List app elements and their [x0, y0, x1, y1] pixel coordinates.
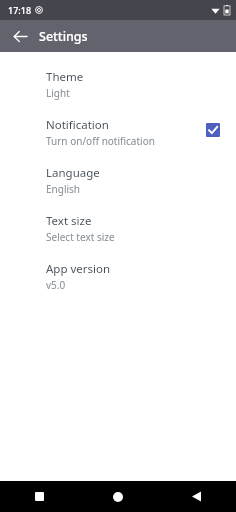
staticText: Language — [46, 165, 100, 181]
button[interactable]: App version — [0, 261, 236, 309]
button[interactable]: Back — [8, 24, 32, 48]
button[interactable]: Language — [0, 165, 236, 213]
staticText: 17:18 — [8, 4, 32, 16]
button[interactable]: Theme — [0, 69, 236, 117]
staticText: Turn on/off notification — [46, 134, 155, 148]
staticText: v5.0 — [46, 278, 66, 292]
staticText: App version — [46, 261, 111, 277]
button[interactable]: Recent apps — [0, 481, 78, 512]
staticText: Notification — [46, 117, 109, 133]
staticText: Theme — [46, 69, 84, 85]
staticText: Settings — [39, 28, 88, 45]
staticText: Select text size — [46, 230, 115, 244]
button[interactable]: Home — [78, 481, 157, 512]
staticText: Light — [46, 86, 70, 100]
button[interactable]: Back — [157, 481, 236, 512]
staticText: English — [46, 182, 81, 196]
button[interactable]: Notification — [0, 117, 236, 165]
staticText: Text size — [46, 213, 92, 229]
button[interactable]: Text size — [0, 213, 236, 261]
button[interactable]: Toggle notification — [203, 120, 223, 140]
